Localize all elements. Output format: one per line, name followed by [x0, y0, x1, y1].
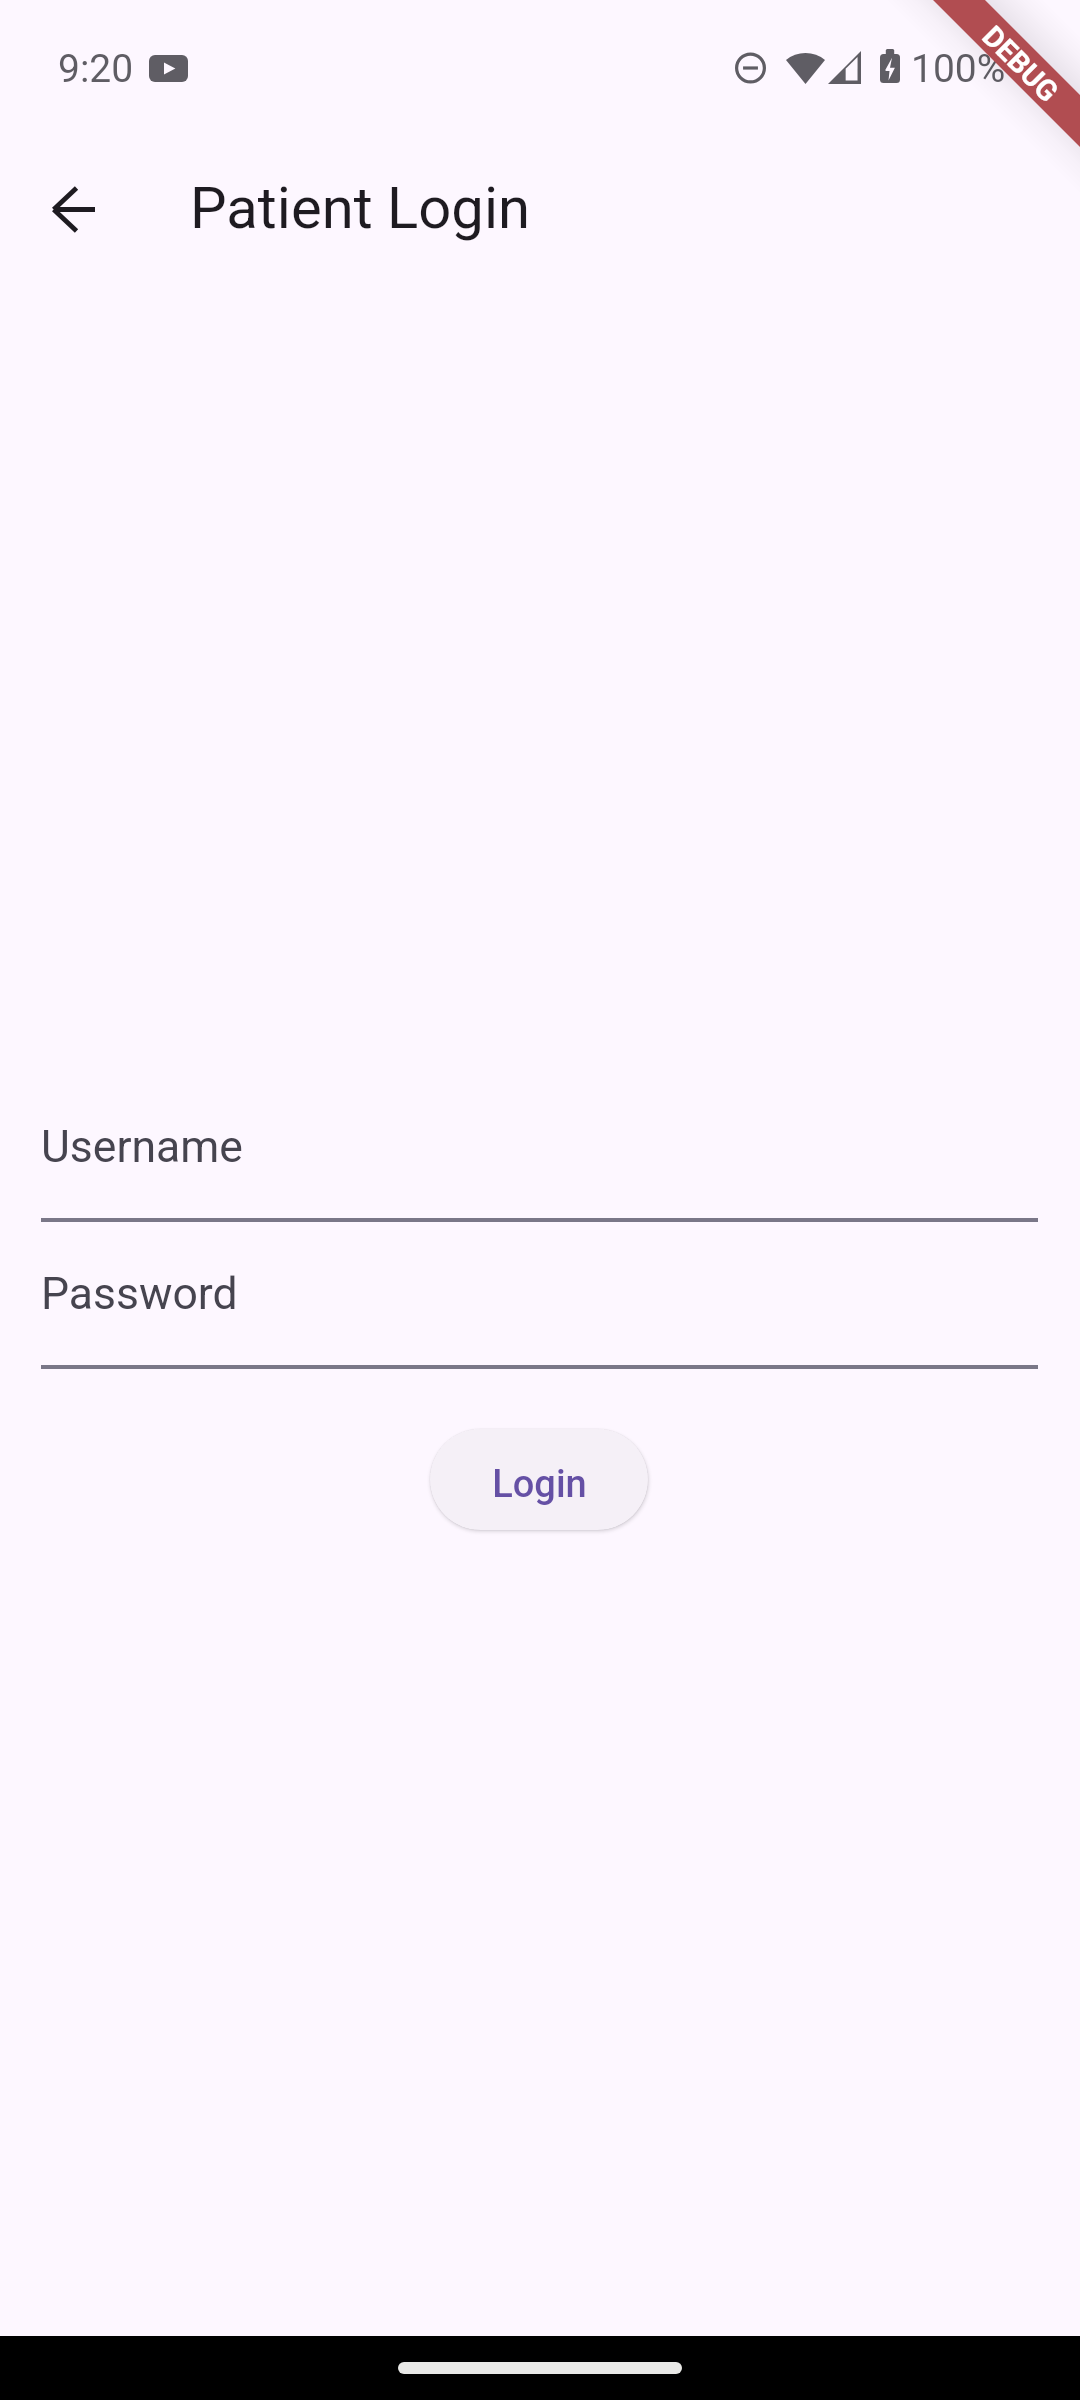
staticText: DEBUG — [976, 19, 1065, 109]
button[interactable]: Username — [41, 1110, 1038, 1222]
staticText: Password — [41, 1268, 238, 1320]
staticText: Username — [41, 1121, 243, 1173]
button[interactable]: Login — [430, 1429, 648, 1530]
staticText: Patient Login — [190, 174, 531, 242]
button[interactable]: Back — [25, 161, 121, 257]
staticText: 9:20 — [58, 46, 134, 92]
button[interactable]: Password — [41, 1257, 1038, 1369]
staticText: 100% — [911, 46, 1006, 92]
staticText: Login — [492, 1462, 587, 1507]
